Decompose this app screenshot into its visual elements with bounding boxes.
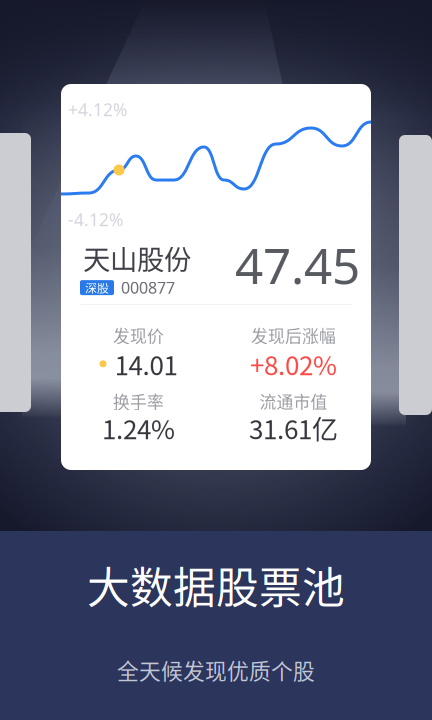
staticText: 全天候发现优质个股 xyxy=(117,654,315,685)
staticText: 发现价 xyxy=(113,323,164,347)
staticText: 1.24% xyxy=(102,409,175,447)
staticText: 000877 xyxy=(121,277,175,298)
staticText: +4.12% xyxy=(68,98,127,121)
staticText: -4.12% xyxy=(68,208,123,231)
staticText: 31.61亿 xyxy=(249,409,338,447)
staticText: 换手率 xyxy=(113,389,164,413)
staticText: 47.45 xyxy=(235,232,360,297)
staticText: +8.02% xyxy=(250,345,337,383)
staticText: 14.01 xyxy=(114,345,177,383)
staticText: 发现后涨幅 xyxy=(251,323,336,347)
staticText: 天山股份 xyxy=(83,238,191,278)
staticText: 流通市值 xyxy=(259,389,327,413)
staticText: 大数据股票池 xyxy=(87,554,345,616)
staticText: 深股 xyxy=(85,279,109,296)
